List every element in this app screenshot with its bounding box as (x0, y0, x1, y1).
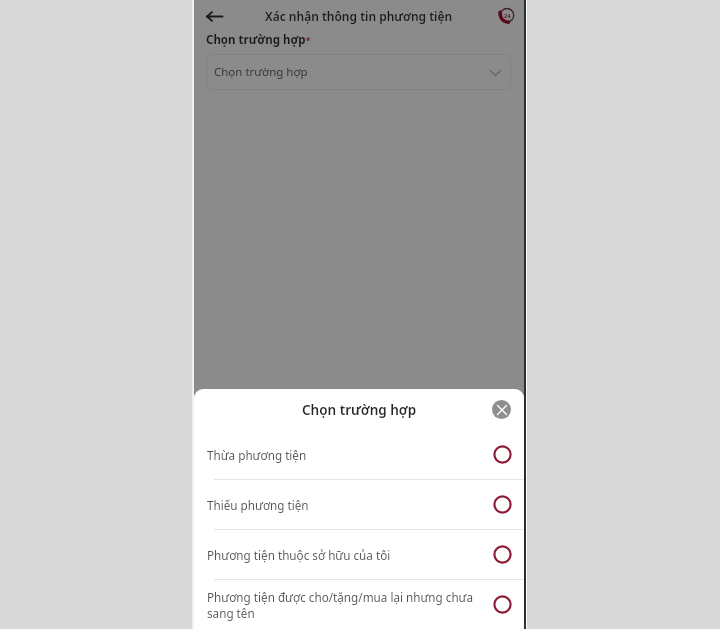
button[interactable]: Chọn trường hợp (206, 54, 511, 90)
staticText: Xác nhận thông tin phương tiện (265, 8, 453, 24)
button[interactable]: Phương tiện thuộc sở hữu của tôi (194, 530, 524, 579)
button[interactable]: Close (492, 400, 511, 419)
staticText: Thiếu phương tiện (207, 497, 309, 513)
staticText: Phương tiện được cho/tặng/mua lại nhưng … (207, 589, 474, 605)
staticText: Chọn trường hợp (302, 401, 417, 419)
button[interactable]: Back (200, 2, 228, 30)
button[interactable]: Thừa phương tiện (194, 430, 524, 479)
staticText: sang tên (207, 605, 255, 621)
staticText: Phương tiện thuộc sở hữu của tôi (207, 547, 391, 563)
button[interactable]: Thiếu phương tiện (194, 480, 524, 529)
staticText: 24 (504, 12, 511, 19)
staticText: Thừa phương tiện (207, 447, 307, 463)
button[interactable]: Phương tiện được cho/tặng/mua lại nhưng … (194, 580, 524, 629)
staticText: Chọn trường hợp* (206, 32, 311, 48)
staticText: Chọn trường hợp (214, 64, 308, 80)
button[interactable]: Support hotline 24/7 (493, 3, 519, 29)
